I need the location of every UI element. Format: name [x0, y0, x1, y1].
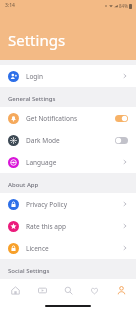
staticText: Dark Mode	[26, 136, 115, 145]
staticText: Privacy Policy	[26, 200, 122, 209]
button[interactable]: Privacy Policy	[0, 193, 136, 215]
staticText: 3:14	[5, 2, 15, 9]
button[interactable]: Login	[0, 65, 136, 87]
button[interactable]: Switch on	[115, 115, 128, 122]
staticText: Social Settings	[8, 267, 50, 275]
button[interactable]: Favorites	[83, 279, 105, 302]
button[interactable]: Videos	[31, 279, 53, 302]
staticText: 84%	[119, 3, 128, 9]
staticText: Get Notifications	[26, 114, 115, 123]
button[interactable]: Home	[4, 279, 26, 302]
staticText: About App	[8, 181, 39, 189]
button[interactable]: Get Notifications	[0, 107, 136, 129]
staticText: General Settings	[8, 95, 56, 103]
staticText: Login	[26, 72, 122, 81]
button[interactable]: Search	[57, 279, 79, 302]
button[interactable]: Dark Mode	[0, 129, 136, 151]
button[interactable]: Language	[0, 151, 136, 173]
button[interactable]: Profile	[110, 279, 132, 302]
staticText: Rate this app	[26, 222, 122, 231]
staticText: Settings	[8, 30, 66, 50]
button[interactable]: Switch off	[115, 137, 128, 144]
staticText: Licence	[26, 244, 122, 253]
button[interactable]: Rate this app	[0, 215, 136, 237]
staticText: Language	[26, 158, 122, 167]
button[interactable]: Licence	[0, 237, 136, 259]
